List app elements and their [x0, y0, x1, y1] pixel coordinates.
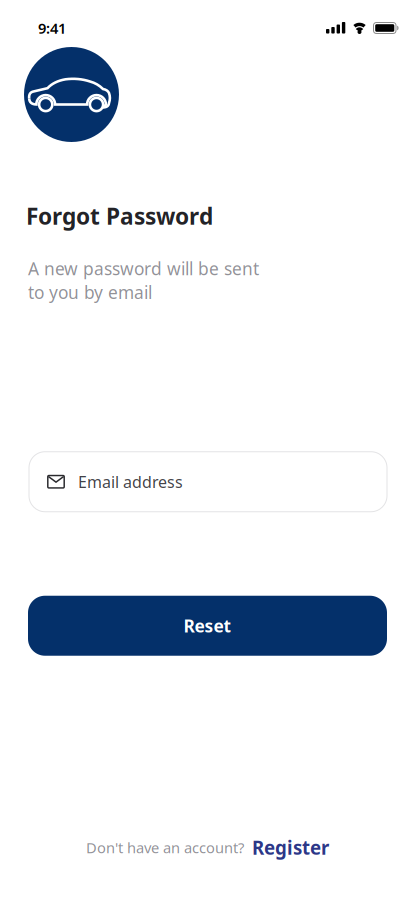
staticText: Email address [78, 471, 183, 492]
button[interactable]: Reset [28, 596, 387, 656]
staticText: Register [252, 835, 329, 860]
staticText: Reset [183, 614, 231, 637]
staticText: 9:41 [38, 18, 66, 38]
staticText: Forgot Password [26, 201, 213, 231]
staticText: Don't have an account? [86, 838, 244, 857]
button[interactable]: Register [252, 835, 329, 860]
button[interactable]: Email address [29, 452, 387, 512]
staticText: A new password will be sent to you by em… [28, 257, 259, 304]
